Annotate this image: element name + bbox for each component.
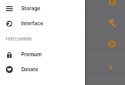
button[interactable]: Donate xyxy=(0,62,85,77)
staticText: Premium xyxy=(21,52,41,57)
button[interactable]: Premium xyxy=(0,47,85,62)
staticText: Interface xyxy=(21,21,43,26)
button[interactable]: Interface xyxy=(0,16,85,31)
staticText: Storage xyxy=(21,6,40,11)
staticText: Fleet Essentials xyxy=(6,36,32,41)
staticText: Donate xyxy=(21,67,38,72)
button[interactable]: Storage xyxy=(0,1,85,16)
